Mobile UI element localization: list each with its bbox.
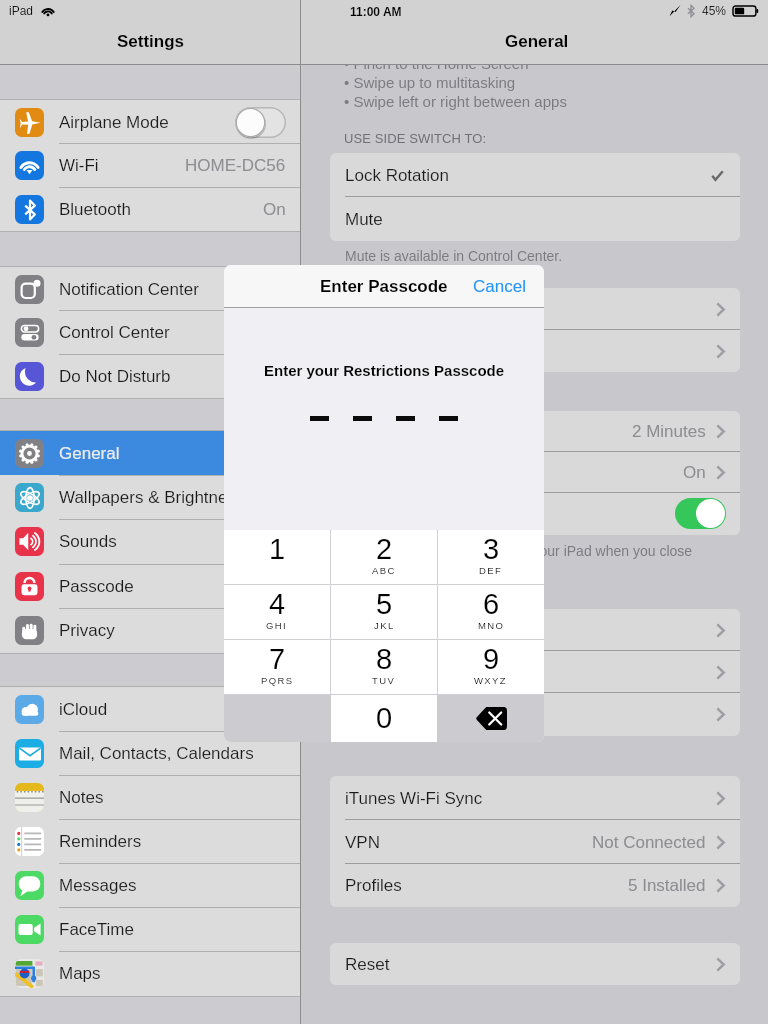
button[interactable]: 2	[331, 530, 437, 584]
button[interactable]: Multitasking Gestures	[330, 288, 740, 330]
staticText: Passcode	[59, 577, 134, 596]
staticText: MNO	[478, 620, 505, 631]
button[interactable]: 8	[331, 640, 437, 694]
staticText: PQRS	[261, 675, 294, 686]
staticText: DEF	[479, 565, 503, 576]
staticText: Reminders	[59, 832, 142, 851]
button[interactable]: 1	[224, 530, 330, 584]
staticText: TUV	[372, 675, 396, 686]
staticText: Control Center	[59, 323, 170, 342]
staticText: iTunes Wi-Fi Sync	[345, 789, 483, 808]
button[interactable]: Usage	[330, 330, 740, 372]
button[interactable]: Messages	[0, 863, 301, 907]
staticText: Settings	[117, 32, 185, 51]
button[interactable]: VPN	[330, 820, 740, 864]
button[interactable]: Profiles	[330, 864, 740, 907]
staticText: iCloud	[59, 700, 108, 719]
button[interactable]: 3	[438, 530, 544, 584]
staticText: 8	[376, 643, 393, 675]
staticText: Not Connected	[592, 833, 706, 852]
staticText: 0	[376, 702, 393, 734]
button[interactable]: Notes	[0, 775, 301, 819]
button[interactable]: iTunes Wi-Fi Sync	[330, 776, 740, 820]
button[interactable]: iCloud	[0, 687, 301, 731]
staticText: Automatically lock and unlock your iPad …	[345, 543, 693, 559]
button[interactable]: 7	[224, 640, 330, 694]
staticText: ABC	[372, 565, 396, 576]
button[interactable]: 0	[331, 695, 437, 742]
button[interactable]: Maps	[0, 951, 301, 995]
staticText: General	[59, 444, 120, 463]
button[interactable]: Wi-Fi	[0, 143, 301, 187]
staticText: Mute	[345, 210, 383, 229]
staticText: 9	[483, 643, 500, 675]
staticText: Cancel	[473, 277, 526, 296]
staticText: 5 Installed	[628, 876, 706, 895]
button[interactable]: Lock Rotation	[330, 153, 740, 197]
staticText: Mute is available in Control Center.	[345, 248, 563, 264]
button[interactable]: Delete	[438, 695, 544, 742]
button[interactable]: Control Center	[0, 310, 301, 354]
staticText: Airplane Mode	[59, 113, 169, 132]
button[interactable]: Mail, Contacts, Calendars	[0, 731, 301, 775]
staticText: 4	[269, 588, 286, 620]
staticText: Enter your Restrictions Passcode	[264, 362, 505, 379]
staticText: iPad	[9, 4, 34, 17]
staticText: Wallpapers & Brightness	[59, 488, 245, 507]
button[interactable]: Date & Time	[330, 609, 740, 651]
button[interactable]: 6	[438, 585, 544, 639]
staticText: WXYZ	[474, 675, 508, 686]
staticText: Profiles	[345, 876, 402, 895]
button[interactable]: Do Not Disturb	[0, 354, 301, 398]
staticText: Messages	[59, 876, 137, 895]
staticText: Date & Time	[345, 621, 439, 640]
staticText: GHI	[266, 620, 288, 631]
button[interactable]: Keyboard	[330, 651, 740, 693]
button[interactable]: FaceTime	[0, 907, 301, 951]
staticText: 5	[376, 588, 393, 620]
staticText: FaceTime	[59, 920, 134, 939]
button[interactable]: 5	[331, 585, 437, 639]
button[interactable]: Sounds	[0, 519, 301, 563]
staticText: Notes	[59, 788, 104, 807]
staticText: JKL	[374, 620, 395, 631]
button[interactable]: Wallpapers & Brightness	[0, 475, 301, 519]
button[interactable]: Bluetooth	[0, 187, 301, 231]
staticText: Wi-Fi	[59, 156, 99, 175]
staticText: 6	[483, 588, 500, 620]
staticText: VPN	[345, 833, 380, 852]
button[interactable]: General	[0, 431, 301, 475]
staticText: International	[345, 705, 439, 724]
staticText: Privacy	[59, 621, 115, 640]
staticText: On	[683, 463, 706, 482]
button[interactable]: Reset	[330, 943, 740, 985]
staticText: • Swipe left or right between apps	[344, 93, 567, 110]
button[interactable]: Notification Center	[0, 267, 301, 311]
staticText: 2 Minutes	[632, 422, 706, 441]
button[interactable]: Auto-Lock	[330, 411, 740, 452]
staticText: Notification Center	[59, 280, 199, 299]
staticText: Reset	[345, 955, 390, 974]
staticText: HOME-DC56	[185, 156, 286, 175]
button[interactable]: 9	[438, 640, 544, 694]
button[interactable]: Cancel	[457, 265, 544, 308]
staticText: Enter Passcode	[320, 277, 448, 296]
button[interactable]: Reminders	[0, 819, 301, 863]
staticText: Maps	[59, 964, 101, 983]
button[interactable]: 4	[224, 585, 330, 639]
staticText: Multitasking Gestures	[345, 300, 509, 319]
staticText: 3	[483, 533, 500, 565]
button[interactable]: Passcode	[0, 564, 301, 608]
button[interactable]: Restrictions	[330, 452, 740, 493]
button[interactable]: Airplane Mode	[0, 100, 301, 144]
button[interactable]: International	[330, 693, 740, 735]
staticText: Lock Rotation	[345, 166, 449, 185]
button[interactable]: Lock / Unlock	[330, 493, 740, 534]
staticText: 7	[269, 643, 286, 675]
button[interactable]: Privacy	[0, 608, 301, 652]
button[interactable]: Mute	[330, 197, 740, 241]
